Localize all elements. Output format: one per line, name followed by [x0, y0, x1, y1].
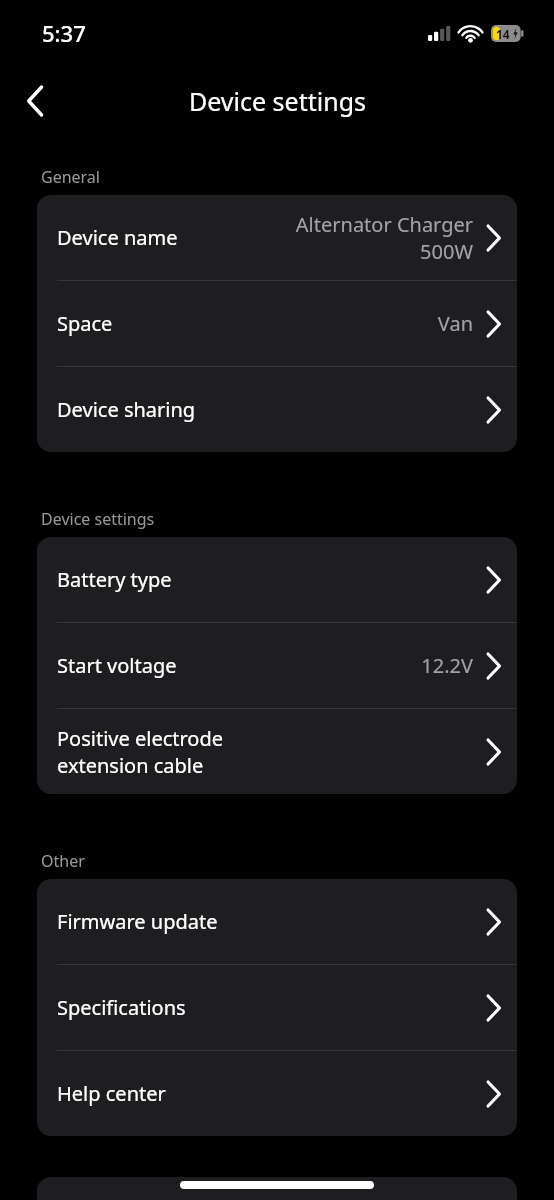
staticText: Device settings	[41, 508, 155, 530]
staticText: Start voltage	[57, 652, 177, 679]
staticText: Positive electrode extension cable	[57, 725, 282, 779]
staticText: Help center	[57, 1080, 166, 1107]
button[interactable]: Help center	[37, 1051, 517, 1136]
button[interactable]: Positive electrode extension cable	[37, 709, 517, 794]
staticText: Battery type	[57, 566, 172, 593]
button[interactable]: Battery type	[37, 537, 517, 622]
staticText: Van	[437, 310, 473, 337]
button[interactable]: Start voltage	[37, 623, 517, 708]
button[interactable]: Device name	[37, 195, 517, 280]
staticText: Alternator Charger 500W	[257, 211, 473, 265]
staticText: Space	[57, 310, 113, 337]
staticText: Device sharing	[57, 396, 196, 423]
staticText: Specifications	[57, 994, 186, 1021]
staticText: 14	[496, 26, 510, 42]
staticText: General	[41, 166, 100, 188]
button[interactable]: Space	[37, 281, 517, 366]
staticText: 12.2V	[421, 652, 473, 679]
staticText: Other	[41, 850, 85, 872]
button[interactable]: Device sharing	[37, 367, 517, 452]
staticText: 5:37	[42, 18, 86, 48]
staticText: Firmware update	[57, 908, 218, 935]
staticText: Device name	[57, 224, 178, 251]
button[interactable]: Specifications	[37, 965, 517, 1050]
button[interactable]: Firmware update	[37, 879, 517, 964]
button[interactable]: Back	[13, 79, 57, 123]
staticText: Device settings	[189, 84, 366, 118]
